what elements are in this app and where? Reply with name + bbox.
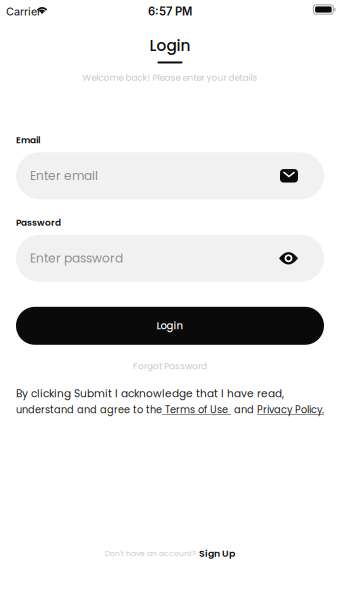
staticText: Sign Up	[199, 547, 235, 560]
staticText: By clicking Submit I acknowledge that I …	[16, 386, 284, 401]
staticText: Enter password	[30, 250, 123, 267]
button[interactable]: Login	[16, 307, 324, 345]
staticText: Carrier	[6, 5, 41, 18]
staticText: Email	[16, 134, 40, 146]
staticText: Welcome back! Please enter your details	[82, 71, 257, 84]
button[interactable]: Privacy Policy.	[257, 403, 324, 417]
staticText: Enter email	[30, 167, 98, 184]
staticText: understand and agree to the	[16, 403, 162, 417]
button[interactable]: Forgot Password	[123, 356, 217, 376]
staticText: and	[234, 403, 254, 417]
staticText: Password	[16, 216, 61, 229]
staticText: Don't have an account?	[105, 548, 196, 559]
staticText: Terms of Use	[162, 403, 231, 417]
staticText: Privacy Policy.	[257, 403, 324, 417]
button[interactable]: Terms of Use	[162, 403, 231, 417]
staticText: Login	[149, 35, 190, 56]
staticText: Forgot Password	[133, 360, 207, 372]
staticText: 6:57 PM	[148, 5, 192, 18]
button[interactable]: Sign Up	[199, 547, 235, 560]
staticText: Login	[156, 319, 183, 333]
